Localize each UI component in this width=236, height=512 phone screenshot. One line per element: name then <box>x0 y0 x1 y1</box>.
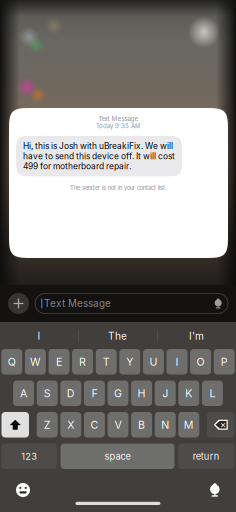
staticText: Hi, this is Josh with uBreakiFix. We wil… <box>23 141 173 151</box>
button[interactable]: J <box>155 380 176 406</box>
staticText: C <box>90 418 98 431</box>
staticText: Text Message <box>44 297 111 309</box>
staticText: Q <box>8 355 16 368</box>
button[interactable]: Q <box>1 349 22 374</box>
staticText: return <box>193 451 220 462</box>
staticText: X <box>67 418 74 431</box>
staticText: × <box>220 419 226 430</box>
staticText: S <box>44 387 51 400</box>
staticText: A <box>20 387 27 400</box>
button[interactable]: K <box>178 380 199 406</box>
button[interactable]: Add attachment <box>8 293 29 314</box>
button[interactable]: F <box>84 380 105 406</box>
button[interactable]: S <box>37 380 58 406</box>
button[interactable]: U <box>143 349 164 374</box>
button[interactable]: O <box>190 349 211 374</box>
staticText: D <box>67 387 75 400</box>
staticText: W <box>30 355 41 368</box>
staticText: B <box>138 418 145 431</box>
staticText: R <box>79 355 86 368</box>
button[interactable]: M <box>178 412 199 437</box>
button[interactable]: G <box>107 380 128 406</box>
staticText: N <box>161 418 169 431</box>
button[interactable]: X <box>60 412 81 437</box>
staticText: I <box>175 355 178 368</box>
button[interactable]: I <box>166 349 187 374</box>
button[interactable]: Text Message <box>35 293 228 313</box>
staticText: Text Message <box>98 115 138 122</box>
button[interactable]: Delete <box>207 412 234 437</box>
button[interactable]: T <box>96 349 117 374</box>
staticText: have to send this device off. It will co… <box>23 151 175 161</box>
button[interactable]: Z <box>37 412 58 437</box>
staticText: F <box>91 387 97 400</box>
button[interactable]: I <box>0 323 78 349</box>
staticText: 123 <box>21 451 37 462</box>
staticText: E <box>56 355 62 368</box>
staticText: J <box>162 387 168 400</box>
staticText: space <box>104 451 130 462</box>
staticText: The sender is not in your contact list. <box>70 184 167 191</box>
button[interactable]: I'm <box>157 323 236 349</box>
button[interactable]: Y <box>119 349 140 374</box>
button[interactable]: W <box>25 349 46 374</box>
button[interactable]: A <box>13 380 34 406</box>
button[interactable]: P <box>214 349 235 374</box>
button[interactable]: B <box>131 412 152 437</box>
button[interactable]: Shift <box>1 412 29 437</box>
button[interactable]: N <box>155 412 176 437</box>
button[interactable]: L <box>202 380 223 406</box>
staticText: V <box>114 418 121 431</box>
staticText: O <box>197 355 205 368</box>
staticText: U <box>149 355 157 368</box>
button[interactable]: V <box>107 412 128 437</box>
button[interactable]: E <box>48 349 69 374</box>
button[interactable]: space <box>60 443 174 469</box>
staticText: Y <box>126 355 133 368</box>
staticText: P <box>221 355 228 368</box>
button[interactable]: R <box>72 349 93 374</box>
staticText: G <box>114 387 122 400</box>
staticText: I'm <box>189 330 204 342</box>
staticText: T <box>103 355 110 368</box>
button[interactable]: C <box>84 412 105 437</box>
button[interactable]: 123 <box>1 443 57 469</box>
staticText: L <box>209 387 215 400</box>
staticText: Today 9:35 AM <box>96 122 141 130</box>
button[interactable]: Emoji keyboard <box>0 475 38 505</box>
button[interactable]: Dictate <box>202 476 236 503</box>
staticText: H <box>138 387 146 400</box>
button[interactable]: D <box>60 380 81 406</box>
staticText: The <box>108 330 127 342</box>
staticText: Z <box>44 418 51 431</box>
button[interactable]: The <box>78 323 157 349</box>
staticText: M <box>184 418 194 431</box>
staticText: K <box>185 387 192 400</box>
staticText: I <box>37 330 40 342</box>
button[interactable]: return <box>178 443 234 469</box>
staticText: 499 for motherboard repair. <box>23 161 131 171</box>
button[interactable]: H <box>131 380 152 406</box>
